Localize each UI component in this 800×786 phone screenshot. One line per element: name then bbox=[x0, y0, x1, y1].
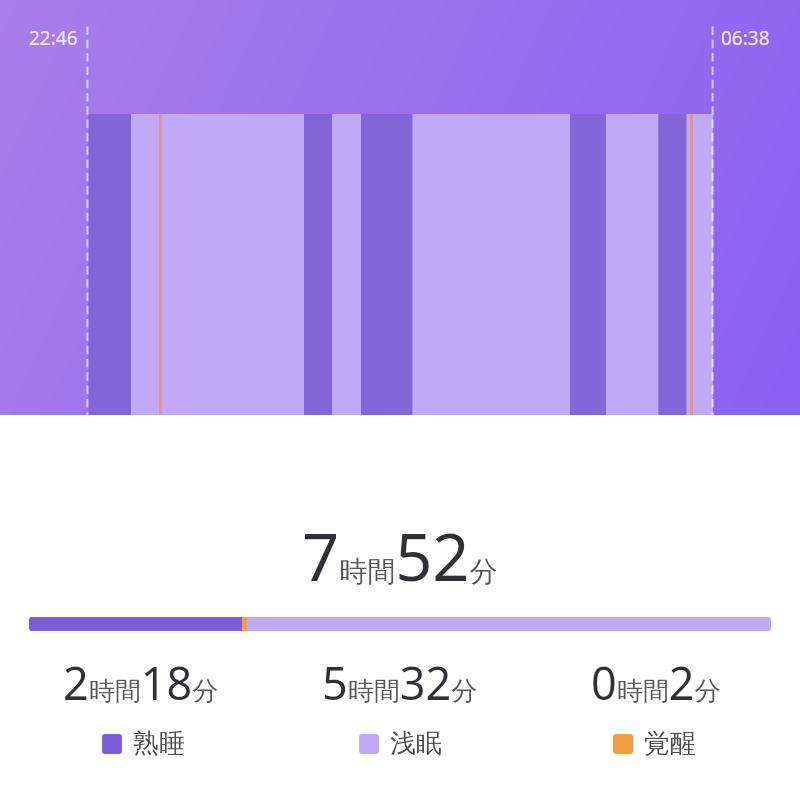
button[interactable]: 浅眠 bbox=[359, 727, 442, 760]
button[interactable]: 覚醒 bbox=[613, 727, 696, 760]
staticText: 浅眠 bbox=[390, 727, 442, 760]
staticText: 5時間32分 bbox=[322, 652, 478, 713]
staticText: 7時間52分 bbox=[302, 512, 498, 601]
staticText: 06:38 bbox=[721, 25, 770, 51]
staticText: 2時間18分 bbox=[63, 652, 219, 713]
staticText: 22:46 bbox=[29, 25, 78, 51]
staticText: 覚醒 bbox=[644, 727, 696, 760]
staticText: 0時間2分 bbox=[591, 652, 721, 713]
button[interactable]: 熟睡 bbox=[102, 727, 185, 760]
button[interactable] bbox=[29, 617, 771, 631]
staticText: 熟睡 bbox=[133, 727, 185, 760]
